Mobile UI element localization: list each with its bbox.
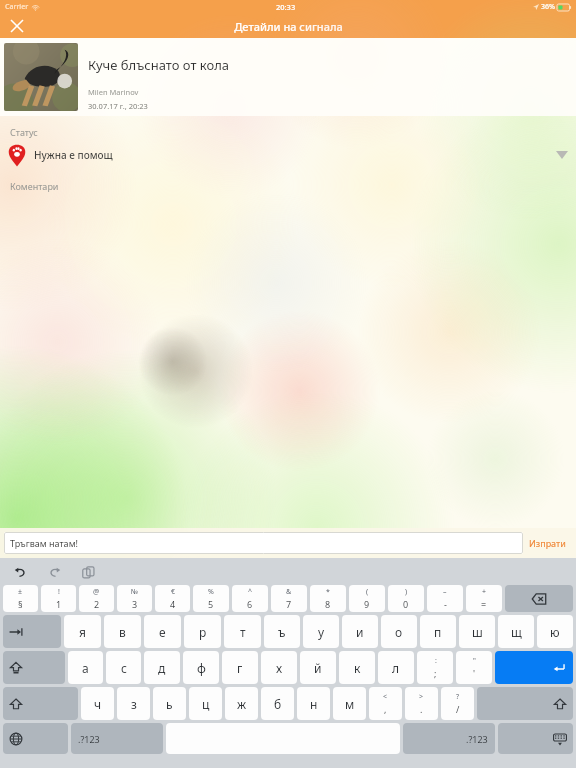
button[interactable]: * — [310, 585, 346, 612]
staticText: й — [314, 660, 322, 676]
button[interactable]: з — [117, 687, 150, 720]
staticText: ) — [405, 587, 408, 597]
button[interactable]: н — [297, 687, 330, 720]
button[interactable]: о — [381, 615, 417, 648]
button[interactable]: я — [64, 615, 101, 648]
staticText: + — [482, 587, 487, 597]
staticText: - — [444, 598, 447, 610]
staticText: ж — [237, 696, 247, 712]
staticText: Куче блъснато от кола — [88, 56, 230, 74]
button[interactable]: с — [106, 651, 141, 684]
button[interactable]: Change keyboard — [3, 723, 68, 754]
button[interactable]: щ — [498, 615, 534, 648]
button[interactable]: т — [224, 615, 261, 648]
button[interactable]: Undo — [10, 562, 30, 582]
staticText: 9 — [364, 598, 370, 610]
button[interactable]: ± — [3, 585, 38, 612]
button[interactable]: Return — [495, 651, 573, 684]
button[interactable]: ^ — [232, 585, 268, 612]
button[interactable]: ц — [189, 687, 222, 720]
staticText: > — [419, 692, 424, 702]
button[interactable]: Caps lock — [3, 651, 65, 684]
staticText: я — [79, 624, 86, 640]
button[interactable]: в — [104, 615, 141, 648]
staticText: и — [356, 624, 364, 640]
button[interactable]: л — [378, 651, 414, 684]
button[interactable]: ( — [349, 585, 385, 612]
staticText: с — [121, 660, 127, 676]
button[interactable]: – — [427, 585, 463, 612]
staticText: € — [171, 587, 176, 597]
staticText: ! — [58, 587, 60, 597]
staticText: ( — [366, 587, 369, 597]
button[interactable]: < — [369, 687, 402, 720]
button[interactable]: + — [466, 585, 502, 612]
button[interactable]: а — [68, 651, 103, 684]
button[interactable]: Куче блъснато от кола — [0, 38, 576, 116]
staticText: Carrier — [5, 2, 29, 12]
button[interactable]: Shift — [3, 687, 78, 720]
staticText: Коментари — [10, 180, 59, 192]
button[interactable]: Close — [4, 14, 30, 38]
staticText: м — [345, 696, 355, 712]
button[interactable]: ъ — [264, 615, 300, 648]
button[interactable]: € — [155, 585, 190, 612]
button[interactable]: п — [420, 615, 456, 648]
button[interactable]: ю — [537, 615, 573, 648]
button[interactable]: Нужна е помощ — [0, 138, 576, 172]
button[interactable]: Paste — [78, 562, 98, 582]
button[interactable]: б — [261, 687, 294, 720]
button[interactable]: р — [184, 615, 221, 648]
staticText: ю — [550, 624, 560, 640]
button[interactable]: & — [271, 585, 307, 612]
button[interactable]: : — [417, 651, 453, 684]
button[interactable]: у — [303, 615, 339, 648]
button[interactable]: й — [300, 651, 336, 684]
staticText: ч — [94, 696, 102, 712]
staticText: : — [435, 656, 437, 666]
button[interactable]: @ — [79, 585, 114, 612]
staticText: 5 — [208, 598, 214, 610]
staticText: ; — [434, 667, 437, 679]
button[interactable]: к — [339, 651, 375, 684]
staticText: " — [473, 656, 476, 666]
staticText: г — [237, 660, 243, 676]
button[interactable]: д — [144, 651, 180, 684]
staticText: 4 — [170, 598, 176, 610]
button[interactable]: .?123 — [403, 723, 495, 754]
staticText: Изпрати — [529, 537, 566, 549]
button[interactable]: ь — [153, 687, 186, 720]
button[interactable]: Backspace — [505, 585, 573, 612]
button[interactable]: е — [144, 615, 181, 648]
button[interactable]: и — [342, 615, 378, 648]
button[interactable]: Тръгвам натам! — [4, 532, 523, 554]
button[interactable]: ж — [225, 687, 258, 720]
button[interactable]: > — [405, 687, 438, 720]
staticText: 0 — [403, 598, 409, 610]
button[interactable]: % — [193, 585, 229, 612]
button[interactable]: ш — [459, 615, 495, 648]
button[interactable]: Hide keyboard — [498, 723, 573, 754]
button[interactable]: Tab — [3, 615, 61, 648]
button[interactable]: Изпрати — [523, 532, 572, 554]
button[interactable]: .?123 — [71, 723, 163, 754]
button[interactable]: ! — [41, 585, 76, 612]
button[interactable]: г — [222, 651, 258, 684]
staticText: / — [456, 703, 460, 715]
button[interactable]: х — [261, 651, 297, 684]
button[interactable]: ч — [81, 687, 114, 720]
button[interactable]: Redo — [44, 562, 64, 582]
button[interactable]: м — [333, 687, 366, 720]
button[interactable]: № — [117, 585, 152, 612]
button[interactable]: ф — [183, 651, 219, 684]
button[interactable]: " — [456, 651, 492, 684]
staticText: 7 — [286, 598, 292, 610]
staticText: ь — [166, 696, 173, 712]
button[interactable]: ) — [388, 585, 424, 612]
staticText: 6 — [247, 598, 253, 610]
button[interactable]: Shift — [477, 687, 573, 720]
staticText: < — [383, 692, 388, 702]
staticText: – — [443, 587, 447, 597]
button[interactable]: ? — [441, 687, 474, 720]
